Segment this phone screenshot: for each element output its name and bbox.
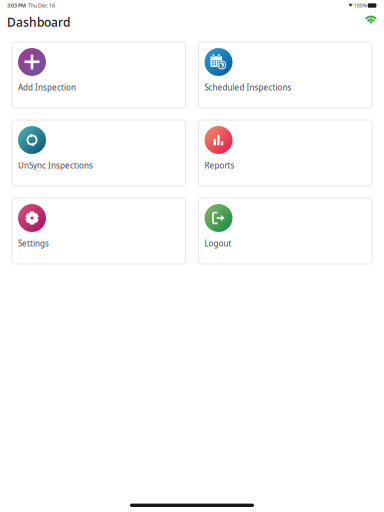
button[interactable]: Logout: [198, 198, 372, 264]
staticText: 100%: [353, 2, 368, 9]
button[interactable]: Settings: [12, 198, 185, 264]
button[interactable]: Scheduled Inspections: [198, 42, 372, 108]
staticText: UnSync Inspections: [18, 160, 93, 171]
staticText: Reports: [204, 160, 234, 171]
button[interactable]: Network connected: [364, 14, 378, 30]
staticText: Settings: [18, 238, 49, 249]
staticText: Thu Dec 16: [26, 2, 55, 9]
button[interactable]: Reports: [198, 120, 372, 186]
staticText: 3:03 PM: [7, 2, 26, 9]
staticText: Add Inspection: [18, 82, 76, 93]
staticText: Dashboard: [7, 14, 70, 30]
button[interactable]: UnSync Inspections: [12, 120, 185, 186]
staticText: Scheduled Inspections: [204, 82, 291, 93]
staticText: Logout: [204, 238, 231, 249]
button[interactable]: Add Inspection: [12, 42, 185, 108]
